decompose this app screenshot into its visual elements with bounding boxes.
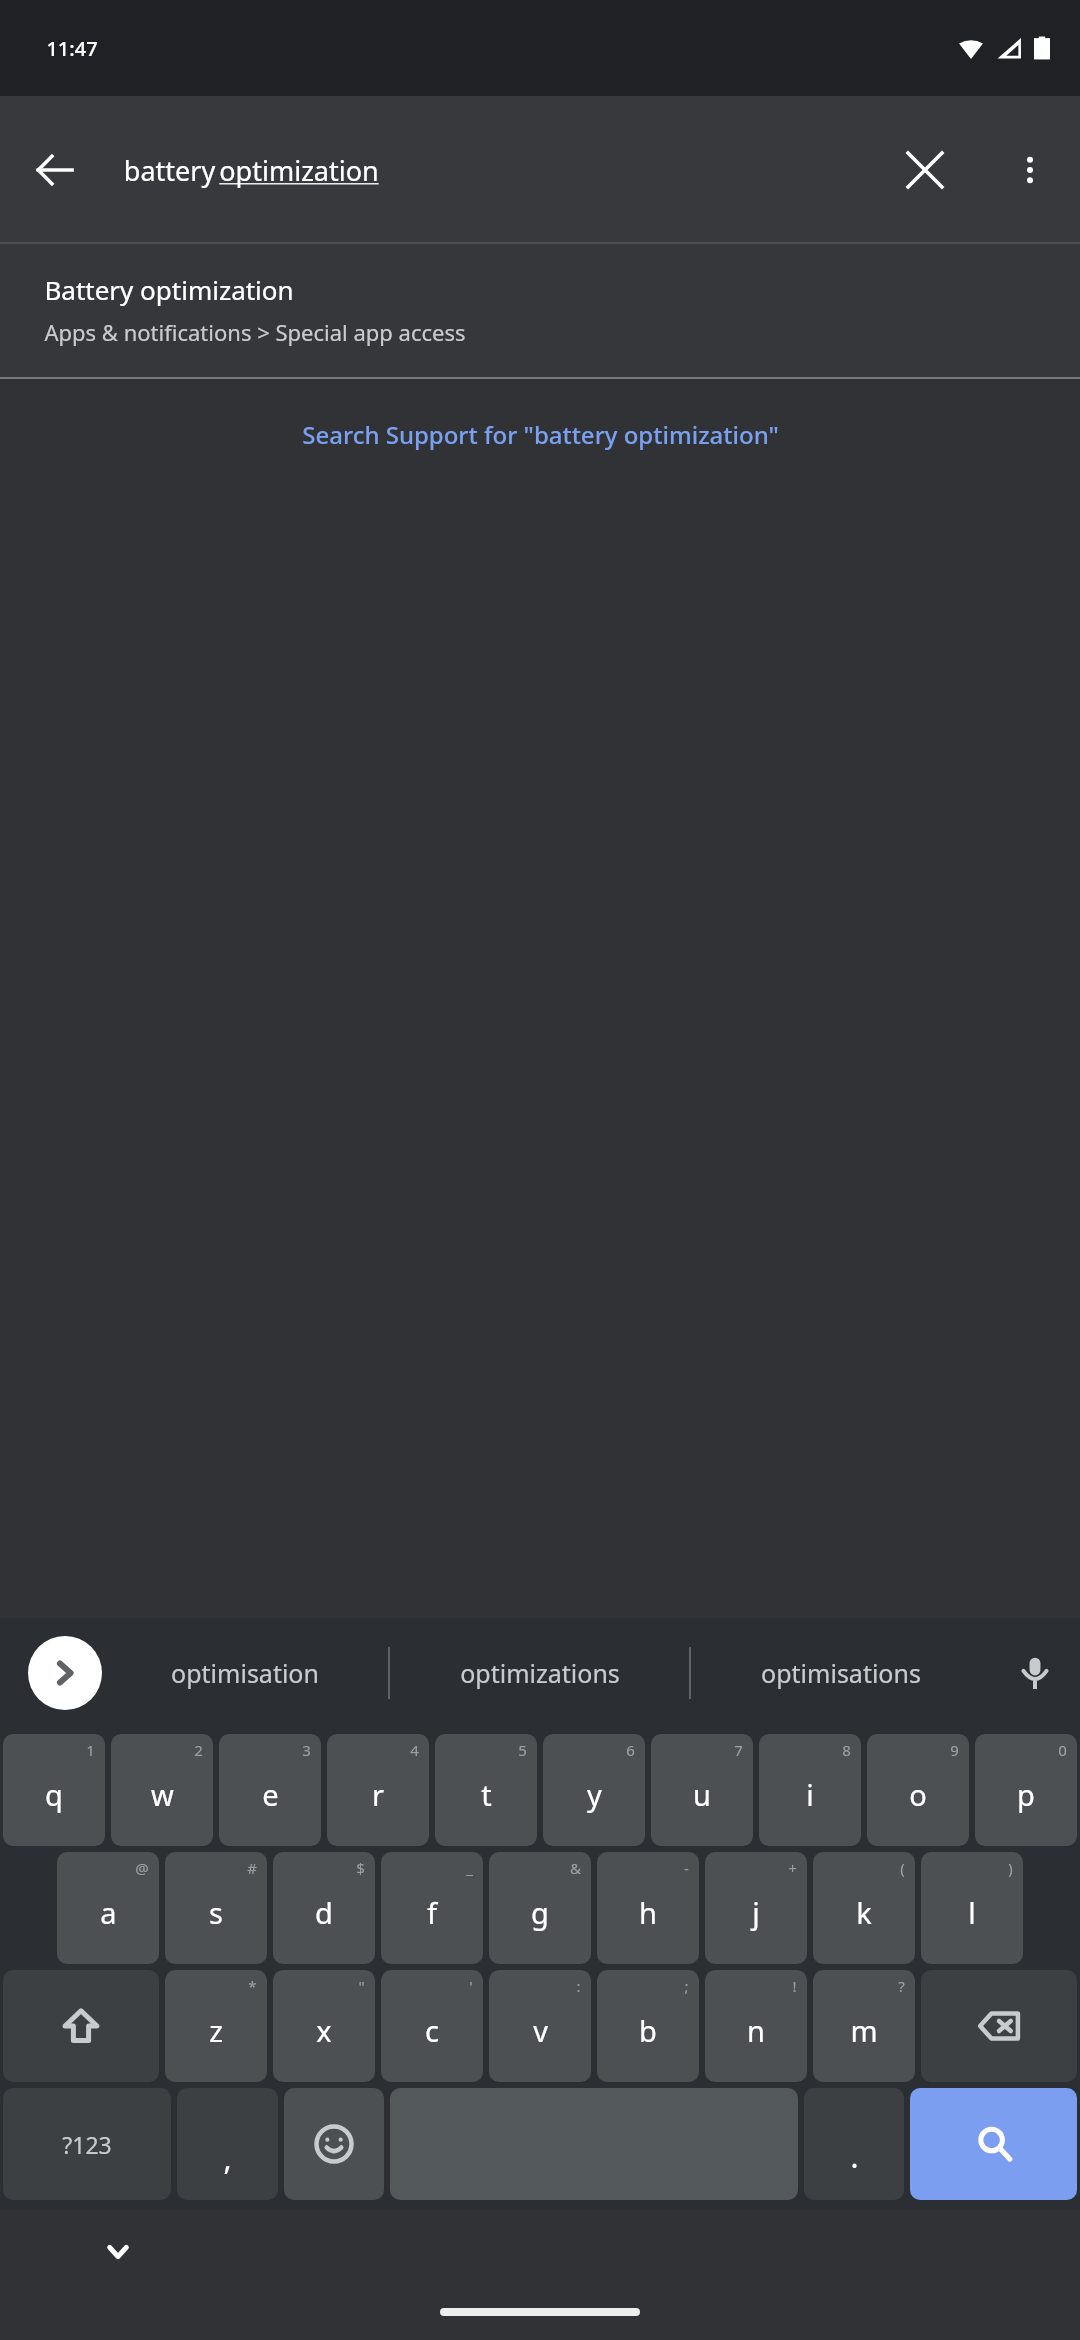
- staticText: u: [693, 1775, 711, 1814]
- staticText: n: [747, 2011, 765, 2050]
- staticText: -: [684, 1858, 689, 1878]
- button[interactable]: #: [165, 1852, 267, 1964]
- staticText: 0: [1058, 1740, 1067, 1760]
- button[interactable]: 7: [651, 1734, 753, 1846]
- staticText: ): [1008, 1858, 1013, 1878]
- button[interactable]: Backspace: [921, 1970, 1077, 2082]
- staticText: w: [151, 1775, 174, 1814]
- staticText: 5: [518, 1740, 527, 1760]
- staticText: 9: [950, 1740, 959, 1760]
- staticText: (: [900, 1858, 905, 1878]
- button[interactable]: Back: [0, 115, 110, 225]
- button[interactable]: $: [273, 1852, 375, 1964]
- staticText: ?123: [62, 2129, 112, 2160]
- staticText: i: [806, 1775, 814, 1814]
- staticText: _: [466, 1858, 473, 1878]
- button[interactable]: Voice input: [990, 1618, 1080, 1728]
- staticText: Apps & notifications > Special app acces…: [44, 317, 466, 347]
- staticText: optimisation: [171, 1656, 319, 1690]
- button[interactable]: (: [813, 1852, 915, 1964]
- button[interactable]: 0: [975, 1734, 1077, 1846]
- staticText: +: [788, 1858, 797, 1878]
- button[interactable]: 9: [867, 1734, 969, 1846]
- staticText: :: [576, 1976, 581, 1996]
- button[interactable]: @: [57, 1852, 159, 1964]
- staticText: ': [469, 1976, 473, 1996]
- button[interactable]: ?: [813, 1970, 915, 2082]
- button[interactable]: &: [489, 1852, 591, 1964]
- button[interactable]: :: [489, 1970, 591, 2082]
- button[interactable]: !: [705, 1970, 807, 2082]
- staticText: &: [570, 1858, 581, 1878]
- staticText: Battery optimization: [44, 272, 294, 307]
- staticText: z: [209, 2011, 223, 2050]
- staticText: c: [425, 2011, 439, 2050]
- button[interactable]: *: [165, 1970, 267, 2082]
- staticText: Search Support for "battery optimization…: [302, 418, 779, 451]
- staticText: v: [533, 2011, 548, 2050]
- button[interactable]: Period: [804, 2088, 904, 2200]
- staticText: 2: [194, 1740, 203, 1760]
- staticText: battery: [120, 152, 219, 189]
- button[interactable]: ?123: [3, 2088, 171, 2200]
- staticText: .: [850, 2136, 859, 2177]
- staticText: m: [850, 2011, 878, 2050]
- button[interactable]: 6: [543, 1734, 645, 1846]
- button[interactable]: Clear search: [870, 115, 980, 225]
- staticText: ?: [898, 1976, 905, 1996]
- button[interactable]: 5: [435, 1734, 537, 1846]
- staticText: 8: [842, 1740, 851, 1760]
- button[interactable]: Search: [910, 2088, 1077, 2200]
- staticText: 4: [410, 1740, 419, 1760]
- button[interactable]: 4: [327, 1734, 429, 1846]
- button[interactable]: optimisations: [691, 1618, 990, 1728]
- staticText: *: [248, 1976, 257, 1996]
- staticText: optimization: [219, 152, 379, 189]
- staticText: l: [968, 1893, 976, 1932]
- button[interactable]: Emoji: [284, 2088, 384, 2200]
- button[interactable]: optimisation: [102, 1618, 388, 1728]
- button[interactable]: 8: [759, 1734, 861, 1846]
- button[interactable]: Hide keyboard: [90, 2224, 146, 2280]
- staticText: 11:47: [46, 35, 98, 62]
- staticText: p: [1017, 1775, 1035, 1814]
- staticText: #: [247, 1858, 257, 1878]
- staticText: a: [100, 1893, 117, 1932]
- button[interactable]: Battery optimization: [0, 244, 1080, 377]
- button[interactable]: ': [381, 1970, 483, 2082]
- staticText: t: [481, 1775, 492, 1814]
- staticText: s: [209, 1893, 223, 1932]
- button[interactable]: _: [381, 1852, 483, 1964]
- staticText: ,: [223, 2138, 232, 2179]
- staticText: ": [358, 1976, 365, 1996]
- button[interactable]: Comma: [177, 2088, 278, 2200]
- button[interactable]: -: [597, 1852, 699, 1964]
- staticText: f: [427, 1893, 437, 1932]
- staticText: optimizations: [460, 1656, 620, 1690]
- staticText: o: [909, 1775, 927, 1814]
- button[interactable]: More options: [980, 120, 1080, 220]
- button[interactable]: 2: [111, 1734, 213, 1846]
- staticText: y: [587, 1775, 602, 1814]
- staticText: e: [262, 1775, 279, 1814]
- button[interactable]: Expand suggestions: [28, 1636, 102, 1710]
- button[interactable]: Shift: [3, 1970, 159, 2082]
- staticText: g: [531, 1893, 549, 1932]
- button[interactable]: ): [921, 1852, 1023, 1964]
- button[interactable]: ;: [597, 1970, 699, 2082]
- staticText: k: [856, 1893, 872, 1932]
- staticText: ;: [684, 1976, 689, 1996]
- staticText: x: [316, 2011, 332, 2050]
- staticText: h: [639, 1893, 657, 1932]
- staticText: r: [372, 1775, 384, 1814]
- staticText: @: [135, 1858, 149, 1878]
- button[interactable]: optimizations: [390, 1618, 689, 1728]
- button[interactable]: 1: [3, 1734, 105, 1846]
- button[interactable]: 3: [219, 1734, 321, 1846]
- button[interactable]: Search Support for "battery optimization…: [0, 379, 1080, 489]
- staticText: $: [356, 1858, 365, 1878]
- staticText: b: [639, 2011, 657, 2050]
- button[interactable]: ": [273, 1970, 375, 2082]
- button[interactable]: +: [705, 1852, 807, 1964]
